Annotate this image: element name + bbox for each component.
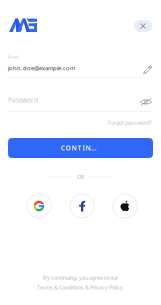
staticText: john.doe@example.com [8, 64, 75, 72]
button[interactable]: Forgot password? [108, 119, 151, 126]
button[interactable]: Continue with Google [27, 194, 51, 218]
staticText: Terms & Conditions & Privacy Policy. [37, 283, 124, 291]
button[interactable]: Continue with Facebook [70, 194, 94, 218]
staticText: Email [8, 54, 18, 60]
button[interactable]: Show password [140, 94, 153, 106]
staticText: CONTINUE [61, 143, 100, 153]
staticText: By continuing, you agree to our [43, 274, 118, 281]
button[interactable]: Edit email [143, 62, 153, 74]
button[interactable]: Terms & Conditions & Privacy Policy. [37, 283, 124, 291]
button[interactable]: CONTINUE [8, 138, 153, 158]
staticText: Forgot password? [108, 119, 151, 126]
staticText: OR [77, 173, 84, 181]
button[interactable]: Close [134, 20, 152, 32]
button[interactable]: Continue with Apple [113, 194, 137, 218]
staticText: Password [8, 96, 38, 104]
